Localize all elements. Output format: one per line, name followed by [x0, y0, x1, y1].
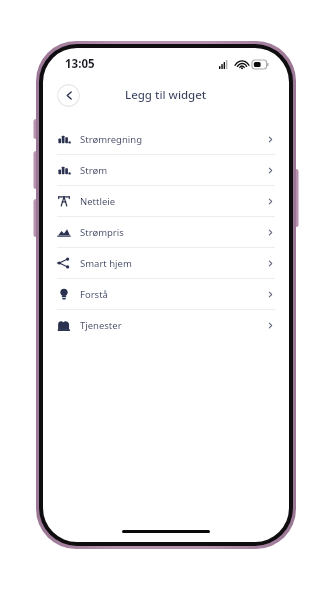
staticText: Nettleie — [80, 195, 116, 208]
button[interactable]: Strømregning — [43, 124, 289, 154]
staticText: Strøm — [80, 164, 108, 177]
button[interactable]: Strøm — [43, 155, 289, 185]
staticText: Strømpris — [80, 226, 124, 239]
staticText: Smart hjem — [80, 257, 132, 270]
button[interactable]: Back — [57, 84, 80, 107]
button[interactable]: Smart hjem — [43, 248, 289, 278]
staticText: 13:05 — [65, 56, 95, 72]
button[interactable]: Forstå — [43, 279, 289, 309]
button[interactable]: Nettleie — [43, 186, 289, 216]
button[interactable]: Strømpris — [43, 217, 289, 247]
staticText: Legg til widget — [125, 87, 207, 103]
button[interactable]: Tjenester — [43, 310, 289, 340]
staticText: Strømregning — [80, 133, 142, 146]
staticText: Forstå — [80, 288, 108, 301]
staticText: Tjenester — [80, 319, 122, 332]
